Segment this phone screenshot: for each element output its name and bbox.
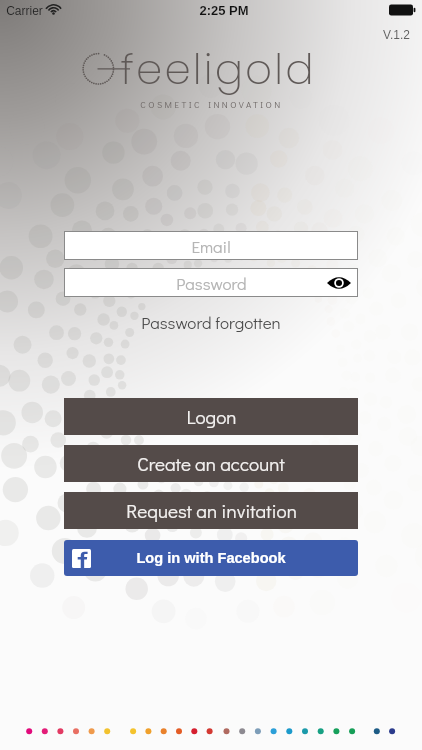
staticText: V.1.2 xyxy=(383,28,410,41)
button[interactable]: Password forgotten xyxy=(141,311,281,333)
button[interactable]: Email xyxy=(64,231,358,260)
staticText: Carrier xyxy=(6,4,43,17)
staticText: Request an invitation xyxy=(126,498,297,523)
staticText: Password xyxy=(176,272,247,294)
staticText: feeligold xyxy=(120,40,316,99)
staticText: 2:25 PM xyxy=(199,3,249,18)
staticText: Logon xyxy=(186,404,237,429)
button[interactable]: Logon xyxy=(64,398,358,435)
staticText: Email xyxy=(191,235,231,257)
button[interactable]: Create an account xyxy=(64,445,358,482)
staticText: Log in with Facebook xyxy=(136,550,286,566)
staticText: Create an account xyxy=(137,451,285,476)
button[interactable]: Request an invitation xyxy=(64,492,358,529)
other: Show password xyxy=(327,275,351,291)
staticText: COSMETIC INNOVATION xyxy=(140,99,283,111)
button[interactable]: Password xyxy=(64,268,358,297)
button[interactable]: Log in with Facebook xyxy=(64,540,358,576)
